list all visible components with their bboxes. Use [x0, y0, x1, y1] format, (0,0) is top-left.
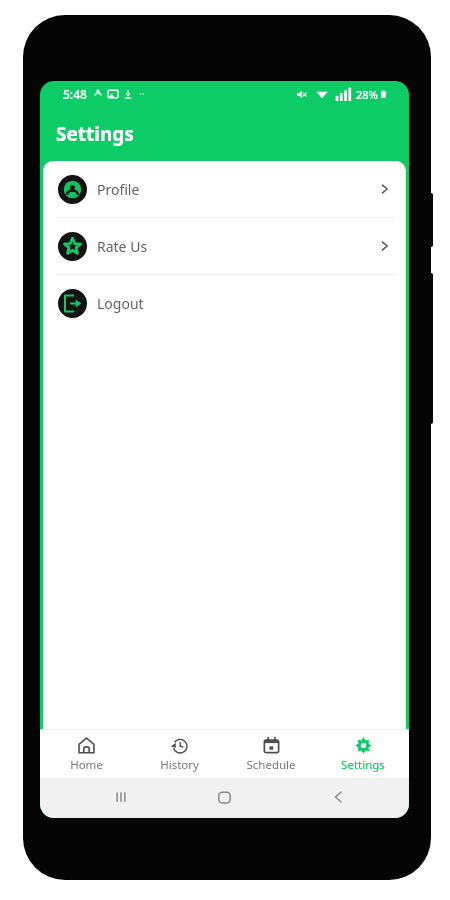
button[interactable]: Logout — [43, 275, 406, 331]
staticText: Schedule — [246, 757, 296, 773]
staticText: 5:48 — [63, 86, 87, 102]
staticText: Settings — [56, 121, 134, 147]
staticText: Logout — [97, 294, 144, 313]
staticText: History — [160, 757, 199, 773]
staticText: Home — [70, 757, 103, 773]
staticText: 28% — [356, 87, 378, 102]
staticText: Profile — [97, 180, 140, 199]
staticText: Rate Us — [97, 237, 148, 256]
button[interactable]: Settings — [317, 730, 409, 778]
button[interactable]: Schedule — [225, 730, 317, 778]
button[interactable]: Home — [40, 730, 133, 778]
other: Recent apps — [115, 791, 127, 803]
other: Home — [218, 791, 231, 804]
other: Back — [332, 791, 344, 803]
button[interactable]: History — [133, 730, 225, 778]
staticText: Settings — [341, 757, 385, 773]
button[interactable]: Profile — [43, 161, 406, 217]
button[interactable]: Rate Us — [43, 218, 406, 274]
